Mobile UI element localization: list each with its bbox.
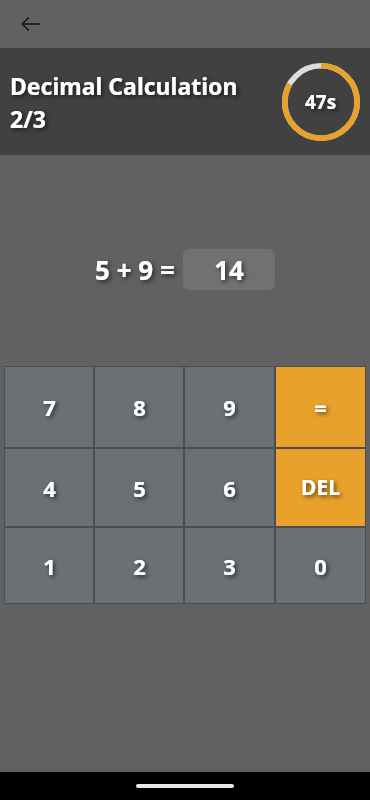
staticText: 3 [223, 551, 236, 581]
staticText: 9 [223, 392, 236, 422]
staticText: 14 [214, 252, 244, 287]
button[interactable]: 1 [5, 528, 93, 603]
button[interactable]: 9 [185, 367, 274, 447]
staticText: = [314, 392, 327, 422]
staticText: 0 [314, 551, 327, 581]
button[interactable]: 0 [276, 528, 365, 603]
staticText: 2/3 [10, 103, 46, 134]
button[interactable]: = [276, 367, 365, 447]
staticText: 2 [133, 551, 146, 581]
staticText: Decimal Calculation [10, 70, 238, 101]
button[interactable]: Back [14, 7, 48, 41]
staticText: 47s [305, 89, 337, 115]
button[interactable]: 6 [185, 449, 274, 526]
button[interactable]: 5 [95, 449, 183, 526]
staticText: 5 + 9 = [95, 252, 175, 287]
staticText: 7 [43, 392, 56, 422]
button[interactable]: 7 [5, 367, 93, 447]
staticText: 8 [133, 392, 146, 422]
button[interactable]: 8 [95, 367, 183, 447]
staticText: 6 [223, 473, 236, 503]
staticText: 5 [133, 473, 146, 503]
button[interactable]: 4 [5, 449, 93, 526]
button[interactable]: 2 [95, 528, 183, 603]
button[interactable]: 3 [185, 528, 274, 603]
staticText: 1 [43, 551, 56, 581]
button[interactable]: DEL [276, 449, 365, 526]
staticText: DEL [301, 473, 340, 502]
button[interactable]: 14 [183, 249, 275, 290]
staticText: 4 [43, 473, 56, 503]
